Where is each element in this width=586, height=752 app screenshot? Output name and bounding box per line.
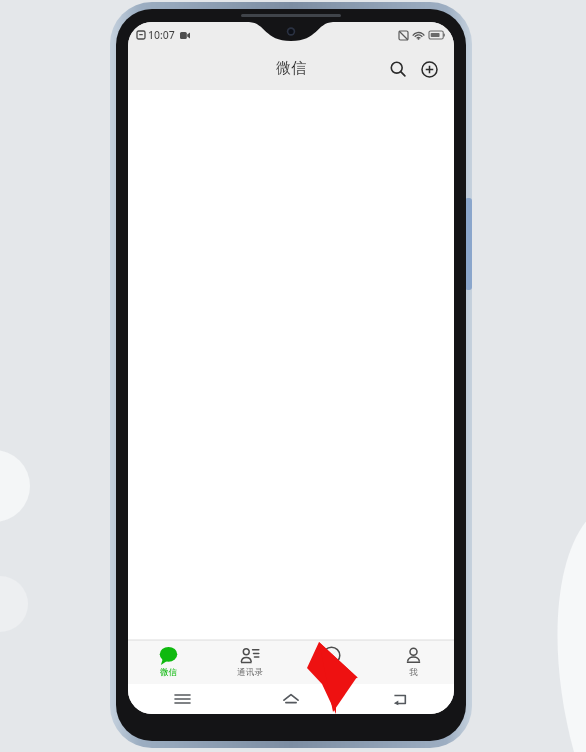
staticText: 微信	[160, 667, 177, 678]
button[interactable]: 发现	[290, 640, 372, 684]
staticText: 微信	[276, 59, 306, 78]
button[interactable]: 我	[372, 640, 454, 684]
button[interactable]: Search	[383, 54, 413, 84]
button[interactable]: Back	[345, 684, 454, 714]
button[interactable]: Recent apps	[128, 684, 236, 714]
button[interactable]: 微信	[128, 640, 209, 684]
button[interactable]: Home	[236, 684, 345, 714]
button[interactable]: Add	[414, 54, 444, 84]
staticText: 通讯录	[237, 667, 263, 678]
button[interactable]: 通讯录	[209, 640, 290, 684]
staticText: 10:07	[148, 28, 175, 42]
staticText: 我	[409, 667, 418, 678]
